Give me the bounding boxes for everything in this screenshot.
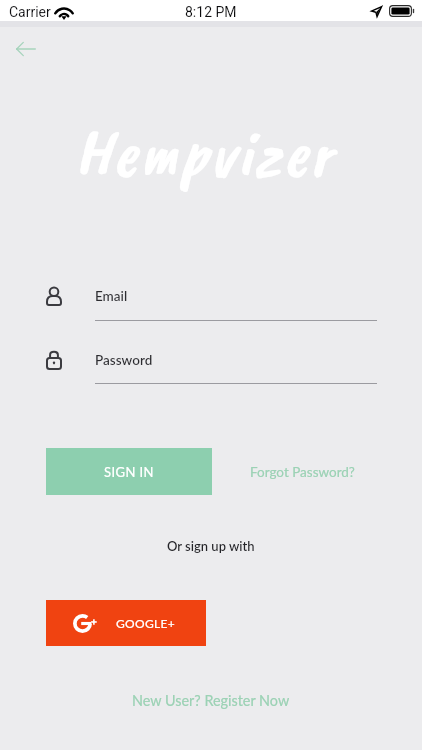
staticText: SIGN IN	[104, 464, 154, 480]
staticText: Forgot Password?	[250, 464, 355, 480]
button[interactable]: SIGN IN	[46, 448, 212, 495]
button[interactable]: GOOGLE+	[46, 600, 206, 646]
staticText: GOOGLE+	[116, 616, 175, 630]
button[interactable]: Forgot Password?	[246, 459, 358, 485]
staticText: 8:12 PM	[185, 4, 237, 20]
staticText: Email	[95, 288, 128, 304]
staticText: Or sign up with	[167, 538, 255, 554]
button[interactable]: New User? Register Now	[121, 686, 301, 714]
staticText: Carrier	[9, 4, 51, 20]
button[interactable]: Back	[4, 31, 48, 66]
staticText: Password	[95, 352, 153, 368]
staticText: New User? Register Now	[132, 692, 290, 709]
